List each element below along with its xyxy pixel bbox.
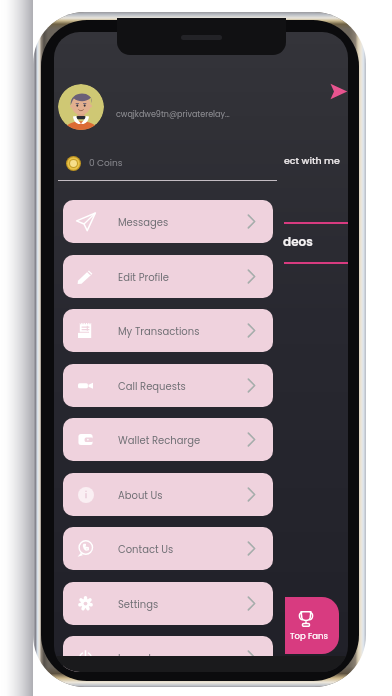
staticText: Contact Us — [118, 542, 174, 556]
staticText: cwqjkdwe9tn@privaterelay… — [116, 109, 230, 120]
staticText: My Transactions — [118, 324, 200, 338]
staticText: Wallet Recharge — [118, 433, 201, 447]
staticText: Messages — [118, 215, 169, 229]
button[interactable]: Call Requests — [63, 364, 273, 407]
button[interactable]: Messages — [63, 200, 273, 243]
button[interactable]: Send — [323, 80, 348, 103]
staticText: Top Fans — [290, 630, 328, 642]
staticText: deos — [283, 233, 313, 250]
button[interactable]: My Transactions — [63, 309, 273, 352]
button[interactable]: About Us — [63, 473, 273, 516]
button[interactable]: Logout — [63, 636, 273, 672]
button[interactable]: Settings — [63, 582, 273, 625]
button[interactable]: Wallet Recharge — [63, 418, 273, 461]
staticText: Edit Profile — [118, 270, 169, 284]
staticText: Logout — [118, 651, 152, 665]
staticText: About Us — [118, 488, 163, 502]
staticText: Settings — [118, 597, 159, 611]
button[interactable]: Contact Us — [63, 527, 273, 570]
button[interactable]: Top Fans — [285, 597, 339, 654]
staticText: ect with me — [284, 154, 340, 167]
staticText: 0 Coins — [89, 157, 123, 170]
button[interactable]: Edit Profile — [63, 255, 273, 298]
staticText: Call Requests — [118, 379, 186, 393]
